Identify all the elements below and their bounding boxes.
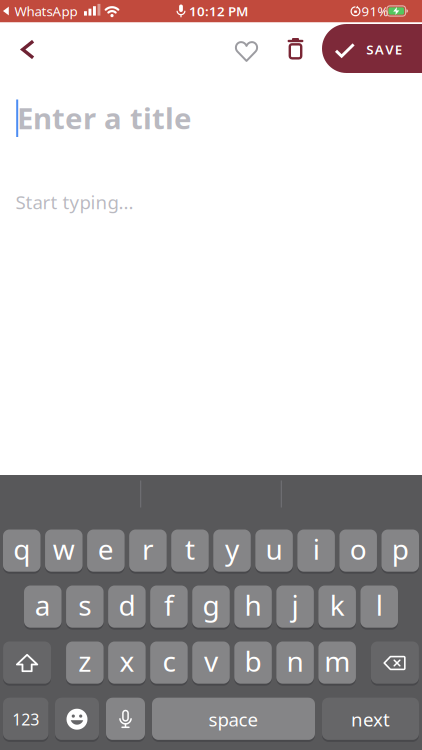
button[interactable]: g [192, 585, 230, 628]
staticText: WhatsApp [14, 2, 77, 20]
staticText: next [351, 707, 390, 732]
button[interactable]: d [108, 585, 146, 628]
staticText: b [244, 642, 261, 680]
button[interactable]: k [318, 585, 356, 628]
staticText: S [366, 40, 373, 58]
staticText: n [287, 642, 304, 680]
button[interactable]: l [360, 585, 398, 628]
button[interactable]: b [234, 641, 272, 684]
button[interactable] [106, 698, 145, 741]
button[interactable]: 123 [3, 698, 48, 741]
staticText: 10:12 PM [189, 2, 248, 20]
staticText: u [266, 530, 283, 568]
button[interactable]: h [234, 585, 272, 628]
staticText: m [324, 642, 350, 680]
button[interactable] [371, 641, 419, 684]
staticText: g [202, 586, 219, 624]
staticText: 91% [361, 2, 388, 20]
staticText: p [392, 530, 409, 568]
button[interactable]: z [66, 641, 104, 684]
button[interactable] [3, 641, 51, 684]
staticText: space [208, 707, 258, 732]
button[interactable]: c [150, 641, 188, 684]
staticText: l [376, 586, 383, 624]
staticText: r [142, 530, 154, 568]
staticText: d [118, 586, 135, 624]
button[interactable]: t [171, 529, 209, 572]
button[interactable]: p [381, 529, 419, 572]
staticText: z [78, 642, 91, 680]
staticText: o [350, 530, 367, 568]
button[interactable]: e [87, 529, 125, 572]
staticText: 123 [12, 709, 39, 730]
button[interactable]: w [45, 529, 82, 572]
staticText: t [185, 530, 195, 568]
staticText: q [13, 530, 30, 568]
button[interactable]: a [24, 585, 61, 628]
staticText: k [330, 586, 345, 624]
staticText: f [164, 586, 174, 624]
staticText: i [313, 530, 320, 568]
staticText: c [162, 642, 175, 680]
staticText: w [53, 530, 75, 568]
button[interactable] [234, 39, 258, 63]
button[interactable] [20, 39, 35, 59]
button[interactable]: next [322, 698, 419, 741]
button[interactable]: S [322, 24, 422, 73]
button[interactable] [286, 38, 304, 59]
button[interactable]: m [318, 641, 356, 684]
staticText: j [292, 586, 299, 624]
button[interactable]: o [339, 529, 377, 572]
staticText: a [35, 586, 51, 624]
staticText: Start typing... [15, 190, 133, 214]
button[interactable]: n [276, 641, 314, 684]
button[interactable]: x [108, 641, 146, 684]
staticText: x [119, 642, 134, 680]
button[interactable]: y [213, 529, 251, 572]
button[interactable]: v [192, 641, 230, 684]
staticText: e [98, 530, 114, 568]
button[interactable]: s [66, 585, 104, 628]
staticText: Enter a title [17, 98, 192, 137]
button[interactable]: r [129, 529, 167, 572]
staticText: s [78, 586, 91, 624]
button[interactable]: u [255, 529, 293, 572]
staticText: h [244, 586, 261, 624]
button[interactable]: f [150, 585, 188, 628]
button[interactable]: space [152, 698, 315, 741]
button[interactable]: j [276, 585, 314, 628]
staticText: v [204, 642, 218, 680]
staticText: E [395, 40, 402, 58]
staticText: A [375, 40, 384, 58]
staticText: V [385, 40, 393, 58]
button[interactable]: i [297, 529, 335, 572]
staticText: y [225, 530, 239, 568]
button[interactable]: q [3, 529, 40, 572]
button[interactable] [55, 698, 99, 741]
